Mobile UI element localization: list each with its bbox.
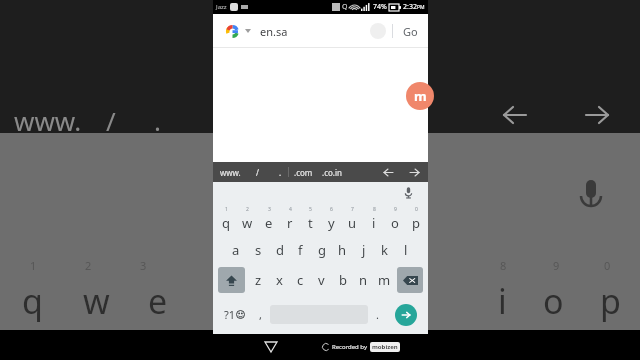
staticText: w (83, 278, 110, 324)
button[interactable]: Next (406, 164, 422, 180)
button[interactable]: c (290, 265, 311, 295)
button[interactable]: z (247, 265, 269, 295)
button[interactable]: .co.in (321, 167, 343, 178)
staticText: . (154, 103, 161, 138)
staticText: 8 (500, 258, 507, 273)
staticText: / (106, 103, 116, 138)
button[interactable]: 9 (384, 202, 405, 235)
staticText: q (222, 214, 230, 232)
button[interactable]: Back (261, 337, 281, 357)
staticText: j (362, 241, 366, 259)
button[interactable]: h (332, 235, 353, 265)
button[interactable]: m (374, 265, 395, 295)
staticText: ?1 (224, 307, 236, 322)
button[interactable]: 0 (405, 202, 426, 235)
button[interactable]: . (368, 298, 387, 331)
button[interactable]: Shift (218, 267, 245, 293)
button[interactable]: 6 (321, 202, 342, 235)
staticText: p (412, 214, 420, 232)
button[interactable]: s (247, 235, 269, 265)
button[interactable]: x (269, 265, 290, 295)
button[interactable]: j (353, 235, 374, 265)
button[interactable]: 4 (279, 202, 300, 235)
button[interactable]: a (225, 235, 247, 265)
staticText: o (391, 214, 399, 232)
button[interactable]: Mobizen recorder (406, 82, 434, 110)
staticText: . (376, 307, 379, 322)
button[interactable]: 8 (363, 202, 384, 235)
staticText: Q (342, 2, 348, 12)
button[interactable]: g (311, 235, 332, 265)
staticText: z (255, 271, 262, 289)
staticText: 3 (140, 258, 147, 273)
button[interactable]: 3 (258, 202, 279, 235)
staticText: 7 (351, 206, 354, 213)
button[interactable]: 5 (300, 202, 321, 235)
staticText: , (259, 307, 262, 322)
staticText: d (276, 241, 284, 259)
staticText: . (279, 167, 282, 178)
button[interactable]: f (290, 235, 311, 265)
staticText: Go (403, 24, 418, 39)
staticText: 2 (85, 258, 92, 273)
staticText: .com (294, 167, 313, 178)
button[interactable]: / (253, 167, 262, 178)
staticText: 2:32 (403, 2, 417, 12)
staticText: g (318, 241, 326, 259)
staticText: www. (220, 167, 241, 178)
button[interactable]: Previous (380, 164, 396, 180)
button[interactable]: 2 (237, 202, 258, 235)
staticText: Recorded by (332, 343, 367, 351)
button[interactable]: Voice input (399, 183, 417, 201)
button[interactable]: 7 (342, 202, 363, 235)
staticText: x (276, 271, 283, 289)
staticText: u (348, 214, 357, 232)
staticText: 9 (394, 206, 397, 213)
staticText: 5 (309, 206, 312, 213)
button[interactable]: Go (395, 304, 417, 326)
staticText: b (339, 271, 347, 289)
staticText: s (255, 241, 262, 259)
button[interactable]: Backspace (397, 267, 423, 293)
button[interactable]: www. (219, 167, 242, 178)
button[interactable]: Go (401, 24, 420, 39)
button[interactable]: .com (293, 167, 314, 178)
button[interactable]: k (374, 235, 395, 265)
button[interactable]: n (353, 265, 374, 295)
staticText: e (148, 278, 168, 324)
button[interactable]: , (251, 298, 270, 331)
staticText: i (372, 214, 376, 232)
staticText: 8 (373, 206, 376, 213)
staticText: w (242, 214, 253, 232)
staticText: 9 (553, 258, 560, 273)
staticText: 1 (225, 206, 228, 213)
staticText: m (378, 271, 391, 289)
button[interactable]: Clear (370, 23, 386, 39)
staticText: 0 (604, 258, 611, 273)
staticText: y (328, 214, 335, 232)
staticText: i (498, 278, 507, 324)
staticText: .co.in (322, 167, 342, 178)
staticText: l (404, 241, 408, 259)
button[interactable]: v (311, 265, 332, 295)
staticText: v (318, 271, 325, 289)
button[interactable]: d (269, 235, 290, 265)
staticText: PM (417, 4, 425, 11)
staticText: / (256, 167, 259, 178)
staticText: mobizen (372, 343, 398, 351)
staticText: k (381, 241, 388, 259)
button[interactable]: 1 (215, 202, 237, 235)
button[interactable]: b (332, 265, 353, 295)
staticText: h (338, 241, 347, 259)
staticText: 2 (246, 206, 249, 213)
staticText: e (265, 214, 273, 232)
staticText: r (287, 214, 293, 232)
staticText: Jazz (216, 3, 227, 11)
button[interactable]: . (276, 167, 285, 178)
staticText: www. (14, 103, 82, 138)
staticText: a (232, 241, 240, 259)
button[interactable]: ?1 (217, 298, 251, 331)
button[interactable]: l (395, 235, 416, 265)
button[interactable]: Search engine (221, 20, 243, 42)
